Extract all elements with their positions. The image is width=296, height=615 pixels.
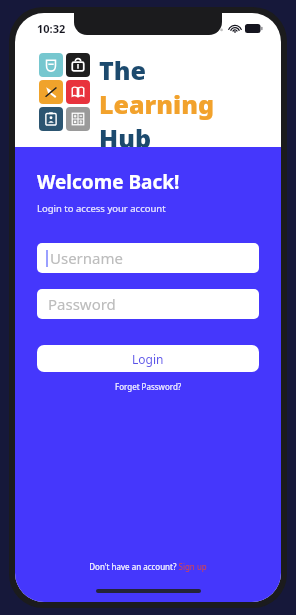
staticText: Learning <box>99 87 215 121</box>
staticText: Don't have an account? Sign up <box>89 561 207 572</box>
button[interactable]: Login <box>37 345 259 372</box>
staticText: 10:32 <box>37 21 66 36</box>
staticText: The <box>99 53 146 87</box>
staticText: Login to access your account <box>37 202 166 215</box>
staticText: Password <box>48 294 116 314</box>
staticText: Forget Password? <box>115 381 182 392</box>
staticText: Hub <box>99 121 151 147</box>
staticText: Login <box>132 351 164 367</box>
button[interactable]: Don't have an account? Sign up <box>37 561 259 572</box>
staticText: Welcome Back! <box>37 169 180 195</box>
button[interactable]: Password <box>37 289 259 319</box>
button[interactable]: Username <box>37 243 259 273</box>
button[interactable]: Forget Password? <box>37 381 259 392</box>
staticText: Username <box>50 248 123 268</box>
